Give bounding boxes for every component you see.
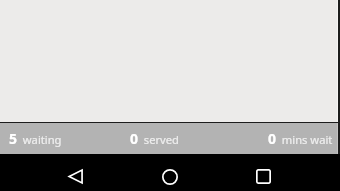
button[interactable]: 5 waiting — [6, 123, 65, 154]
button[interactable]: Home — [154, 161, 185, 191]
staticText: 5 waiting — [9, 129, 62, 148]
button[interactable]: 0 served — [127, 123, 182, 154]
button[interactable]: 0 mins wait — [265, 123, 336, 154]
staticText: 0 served — [130, 129, 179, 148]
staticText: 0 mins wait — [268, 129, 333, 148]
button[interactable]: Back — [60, 161, 91, 191]
button[interactable]: Recent apps — [248, 161, 279, 191]
